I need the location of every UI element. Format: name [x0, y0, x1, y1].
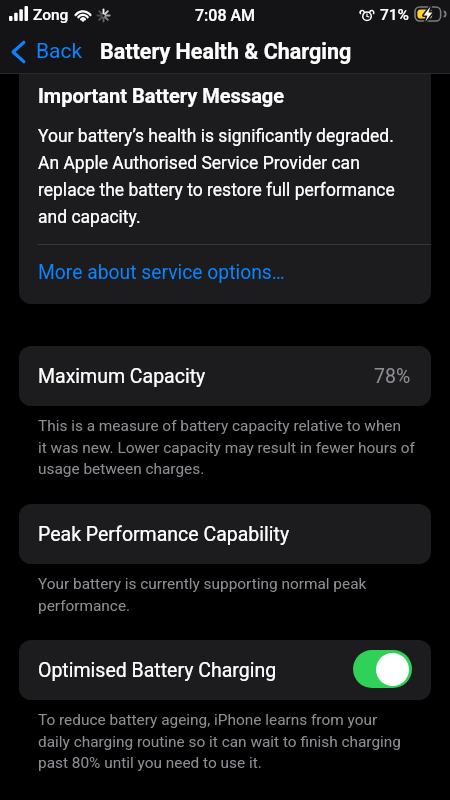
staticText: Maximum Capacity: [38, 365, 206, 388]
staticText: Your battery is currently supporting nor…: [38, 575, 367, 614]
button[interactable]: Back: [0, 35, 91, 68]
staticText: 71%: [380, 6, 410, 24]
staticText: This is a measure of battery capacity re…: [38, 417, 415, 477]
button[interactable]: More about service options…: [19, 245, 431, 304]
staticText: To reduce battery ageing, iPhone learns …: [38, 711, 401, 771]
staticText: Back: [36, 39, 83, 64]
button[interactable]: Peak Performance Capability: [19, 504, 431, 564]
staticText: 7:08 AM: [195, 6, 256, 25]
staticText: Peak Performance Capability: [38, 523, 290, 546]
button[interactable]: Optimised Battery Charging: [353, 650, 412, 688]
staticText: Battery Health & Charging: [100, 39, 352, 64]
staticText: Zong: [33, 6, 69, 24]
staticText: More about service options…: [38, 261, 285, 284]
staticText: Your battery’s health is significantly d…: [38, 126, 395, 228]
staticText: Optimised Battery Charging: [38, 659, 277, 682]
staticText: 78%: [374, 365, 411, 388]
button[interactable]: Maximum Capacity: [19, 346, 431, 406]
staticText: Important Battery Message: [38, 84, 285, 107]
